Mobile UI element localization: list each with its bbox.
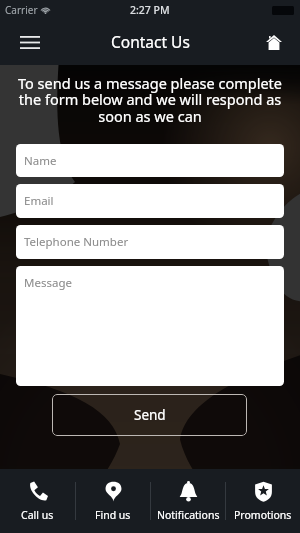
staticText: Carrier [5, 3, 38, 17]
staticText: Message [24, 275, 72, 291]
button[interactable]: Notifications [151, 469, 225, 533]
staticText: Name [24, 153, 57, 169]
button[interactable]: Telephone Number [16, 225, 284, 259]
staticText: Find us [95, 508, 131, 522]
button[interactable]: Message [16, 266, 284, 386]
button[interactable]: Promotions [226, 469, 300, 533]
staticText: To send us a message please complete the… [18, 73, 282, 127]
staticText: Promotions [234, 508, 292, 522]
button[interactable]: Call us [0, 469, 75, 533]
button[interactable]: Menu [0, 20, 58, 65]
staticText: Telephone Number [24, 234, 129, 250]
staticText: Send [134, 406, 166, 424]
button[interactable]: Name [16, 144, 284, 177]
staticText: Contact Us [111, 31, 190, 52]
staticText: Call us [21, 508, 54, 522]
staticText: 2:27 PM [130, 3, 170, 17]
button[interactable]: Home [250, 20, 300, 65]
button[interactable]: Send [52, 394, 247, 436]
staticText: Notifications [157, 508, 220, 522]
button[interactable]: Email [16, 184, 284, 218]
button[interactable]: Find us [76, 469, 150, 533]
staticText: Email [24, 193, 54, 209]
